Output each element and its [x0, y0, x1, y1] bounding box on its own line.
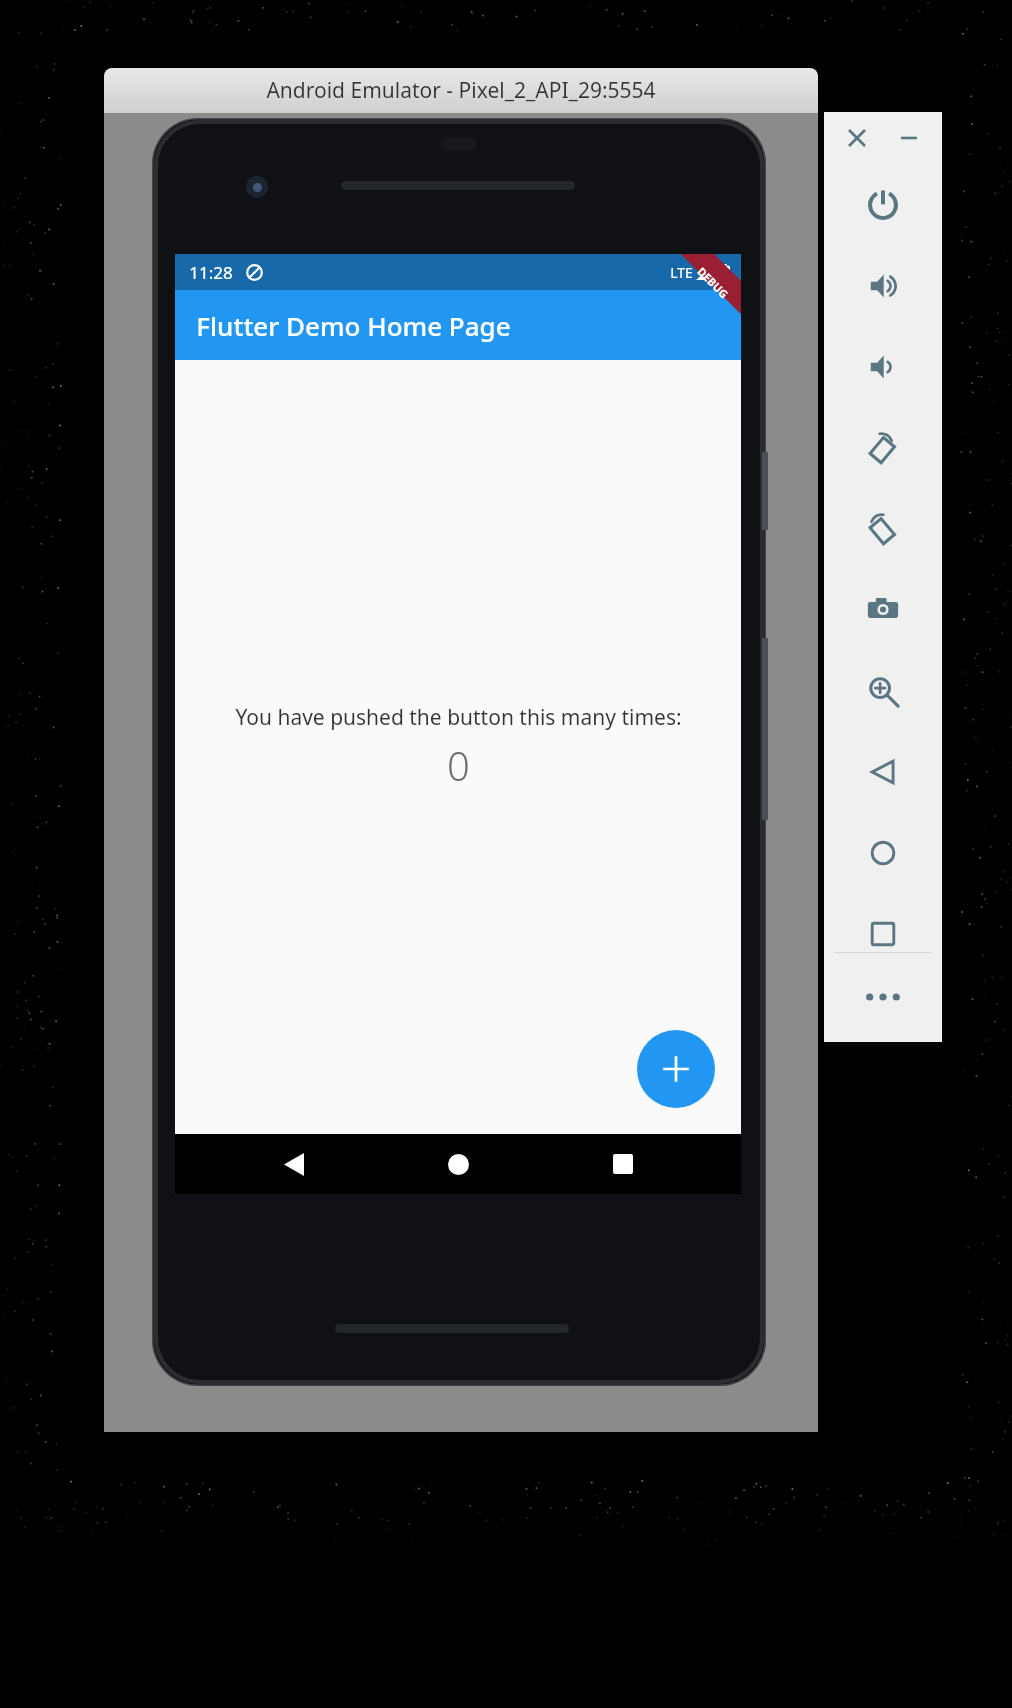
- staticText: Android Emulator - Pixel_2_API_29:5554: [266, 76, 656, 105]
- button[interactable]: Rotate right: [840, 488, 926, 569]
- button[interactable]: Volume up: [840, 245, 926, 326]
- button[interactable]: Rotate left: [840, 407, 926, 488]
- button[interactable]: More: [843, 969, 923, 1025]
- button[interactable]: Back: [248, 1134, 340, 1194]
- button[interactable]: Recent apps: [840, 893, 926, 974]
- staticText: LTE: [670, 263, 693, 282]
- button[interactable]: Increment: [637, 1030, 715, 1108]
- button[interactable]: Home: [840, 812, 926, 893]
- button[interactable]: Minimize: [889, 118, 929, 158]
- button[interactable]: Recent apps: [577, 1134, 669, 1194]
- staticText: DEBUG: [694, 264, 732, 301]
- staticText: Flutter Demo Home Page: [196, 308, 511, 343]
- button[interactable]: Home: [412, 1134, 504, 1194]
- button[interactable]: Power: [840, 164, 926, 245]
- button[interactable]: Volume down: [840, 326, 926, 407]
- staticText: 0: [447, 738, 470, 792]
- staticText: 11:28: [189, 261, 233, 284]
- button[interactable]: Take screenshot: [840, 569, 926, 650]
- button[interactable]: Zoom: [840, 650, 926, 731]
- button[interactable]: Back: [840, 731, 926, 812]
- button[interactable]: Close: [837, 118, 877, 158]
- staticText: You have pushed the button this many tim…: [235, 703, 682, 732]
